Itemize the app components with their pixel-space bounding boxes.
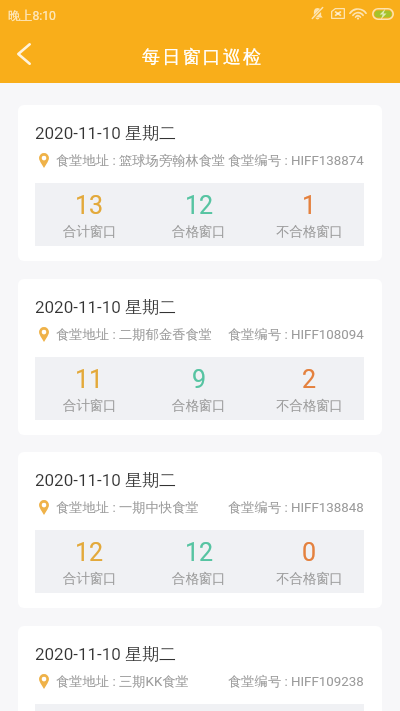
staticText: 合格窗口 — [172, 570, 226, 587]
staticText: 不合格窗口 — [276, 223, 343, 240]
staticText: 2020-11-10 星期二 — [35, 644, 177, 665]
staticText: 食堂编号 : HIFF138874 — [228, 152, 364, 169]
staticText: 11 — [75, 365, 104, 394]
staticText: 1 — [302, 191, 317, 220]
staticText: 12 — [75, 538, 104, 567]
staticText: 12 — [185, 191, 214, 220]
staticText: 合格窗口 — [172, 397, 226, 414]
staticText: 合计窗口 — [63, 397, 117, 414]
staticText: 食堂地址 : 篮球场旁翰林食堂 — [56, 152, 226, 169]
staticText: 合计窗口 — [63, 570, 117, 587]
button[interactable]: 2020-11-10 星期二 — [18, 105, 382, 261]
button[interactable]: 2020-11-10 星期二 — [18, 452, 382, 608]
staticText: 食堂编号 : HIFF109238 — [228, 673, 364, 690]
staticText: 食堂地址 : 一期中快食堂 — [56, 499, 199, 516]
staticText: 2020-11-10 星期二 — [35, 297, 177, 318]
staticText: 食堂编号 : HIFF138848 — [228, 499, 364, 516]
staticText: 食堂地址 : 二期郁金香食堂 — [56, 326, 213, 343]
staticText: 2020-11-10 星期二 — [35, 123, 177, 144]
button[interactable]: Back — [1, 31, 47, 77]
staticText: 合计窗口 — [63, 223, 117, 240]
staticText: 合格窗口 — [172, 223, 226, 240]
staticText: 12 — [185, 538, 214, 567]
staticText: 0 — [302, 538, 317, 567]
staticText: 2020-11-10 星期二 — [35, 470, 177, 491]
button[interactable]: 2020-11-10 星期二 — [18, 626, 382, 711]
staticText: 不合格窗口 — [276, 570, 343, 587]
staticText: 2 — [302, 365, 317, 394]
staticText: 每日窗口巡检 — [142, 46, 264, 69]
staticText: 食堂地址 : 三期KK食堂 — [56, 673, 189, 690]
staticText: 食堂编号 : HIFF108094 — [228, 326, 364, 343]
staticText: 9 — [192, 365, 207, 394]
staticText: 晚上8:10 — [8, 8, 56, 23]
staticText: 不合格窗口 — [276, 397, 343, 414]
staticText: 13 — [75, 191, 104, 220]
button[interactable]: 2020-11-10 星期二 — [18, 279, 382, 435]
